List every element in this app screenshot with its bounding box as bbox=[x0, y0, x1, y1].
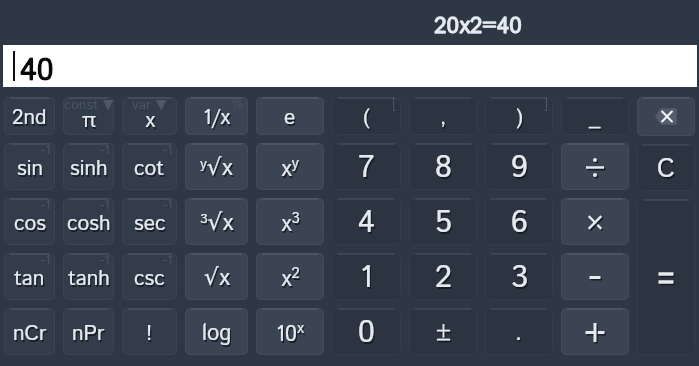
button[interactable]: 3√x bbox=[185, 198, 248, 245]
staticText: tanh bbox=[68, 264, 110, 294]
staticText: 8 bbox=[435, 146, 452, 190]
staticText: 6 bbox=[511, 201, 528, 245]
button[interactable]: x3 bbox=[256, 198, 324, 245]
button[interactable]: nCr bbox=[4, 308, 55, 355]
staticText: x2 bbox=[281, 263, 300, 295]
button[interactable]: , bbox=[409, 97, 477, 135]
staticText: ± bbox=[436, 316, 451, 351]
staticText: sec bbox=[134, 209, 166, 239]
button[interactable]: ( bbox=[332, 97, 401, 135]
button[interactable]: sinh bbox=[63, 143, 114, 190]
button[interactable] bbox=[561, 253, 629, 300]
staticText: -1 bbox=[41, 253, 51, 270]
staticText: [ bbox=[392, 97, 397, 114]
button[interactable]: 5 bbox=[409, 198, 477, 245]
other: Backspace bbox=[633, 93, 699, 140]
button[interactable]: ) bbox=[485, 97, 553, 135]
button[interactable]: x2 bbox=[256, 253, 324, 300]
button[interactable]: ± bbox=[409, 308, 477, 355]
staticText: 9 bbox=[511, 146, 528, 190]
button[interactable]: 1 bbox=[332, 253, 401, 300]
button[interactable]: √x bbox=[185, 253, 248, 300]
button[interactable] bbox=[637, 199, 695, 355]
other: Equals bbox=[633, 195, 699, 359]
button[interactable]: nPr bbox=[63, 308, 114, 355]
staticText: √x bbox=[204, 262, 230, 295]
staticText: 7 bbox=[358, 146, 375, 190]
staticText: 3√x bbox=[200, 207, 234, 240]
button[interactable] bbox=[561, 308, 629, 355]
button[interactable]: cos bbox=[4, 198, 55, 245]
button[interactable]: 4 bbox=[332, 198, 401, 245]
other: Multiply bbox=[557, 194, 633, 249]
button[interactable]: 2nd bbox=[4, 97, 55, 135]
button[interactable]: 8 bbox=[409, 143, 477, 190]
staticText: 5 bbox=[435, 201, 452, 245]
staticText: · bbox=[316, 97, 320, 114]
button[interactable]: _ bbox=[561, 97, 629, 135]
staticText: 4 bbox=[358, 201, 375, 245]
button[interactable]: 1/x bbox=[185, 97, 248, 135]
button[interactable]: log bbox=[185, 308, 248, 355]
button[interactable]: 6 bbox=[485, 198, 553, 245]
button[interactable]: 7 bbox=[332, 143, 401, 190]
button[interactable]: xy bbox=[256, 143, 324, 190]
staticText: 1 bbox=[360, 256, 373, 300]
other: Minus bbox=[557, 249, 633, 304]
button[interactable]: π bbox=[63, 97, 114, 135]
button[interactable]: 3 bbox=[485, 253, 553, 300]
staticText: _ bbox=[589, 103, 601, 133]
staticText: e bbox=[284, 103, 296, 133]
button[interactable]: 10x bbox=[256, 308, 324, 355]
staticText: % bbox=[232, 97, 244, 114]
staticText: -1 bbox=[100, 253, 110, 270]
staticText: 40 bbox=[20, 49, 54, 91]
button[interactable]: sec bbox=[122, 198, 177, 245]
other: Plus bbox=[557, 304, 633, 359]
staticText: 2 bbox=[435, 256, 452, 300]
button[interactable] bbox=[637, 97, 695, 136]
button[interactable]: 0 bbox=[332, 308, 401, 355]
staticText: 10x bbox=[276, 318, 304, 350]
staticText: x3 bbox=[281, 208, 300, 240]
button[interactable]: tan bbox=[4, 253, 55, 300]
button[interactable]: ! bbox=[122, 308, 177, 355]
button[interactable]: tanh bbox=[63, 253, 114, 300]
staticText: nCr bbox=[13, 319, 47, 349]
staticText: 2nd bbox=[12, 103, 47, 133]
button[interactable]: x bbox=[122, 97, 177, 135]
staticText: nPr bbox=[72, 319, 105, 349]
staticText: var ▼ bbox=[132, 97, 167, 115]
staticText: sinh bbox=[70, 154, 108, 184]
staticText: ] bbox=[544, 97, 549, 114]
staticText: -1 bbox=[100, 143, 110, 160]
staticText: cosh bbox=[67, 209, 111, 239]
staticText: cos bbox=[14, 209, 46, 239]
staticText: 20x2=40 bbox=[434, 10, 522, 43]
button[interactable]: C bbox=[637, 144, 695, 191]
staticText: , bbox=[440, 103, 447, 133]
button[interactable]: cot bbox=[122, 143, 177, 190]
button[interactable]: 2 bbox=[409, 253, 477, 300]
staticText: C bbox=[657, 151, 675, 188]
staticText: π bbox=[82, 106, 96, 135]
staticText: cot bbox=[134, 154, 165, 184]
button[interactable]: . bbox=[485, 308, 553, 355]
button[interactable]: y√x bbox=[185, 143, 248, 190]
staticText: -1 bbox=[163, 253, 173, 270]
button[interactable]: 9 bbox=[485, 143, 553, 190]
staticText: ( bbox=[363, 103, 370, 133]
button[interactable]: sin bbox=[4, 143, 55, 190]
button[interactable]: cosh bbox=[63, 198, 114, 245]
staticText: -1 bbox=[100, 198, 110, 215]
staticText: x bbox=[145, 106, 155, 135]
staticText: 0 bbox=[358, 311, 375, 355]
button[interactable]: e bbox=[256, 97, 324, 135]
staticText: ! bbox=[146, 319, 153, 349]
button[interactable]: csc bbox=[122, 253, 177, 300]
button[interactable] bbox=[561, 143, 629, 190]
button[interactable]: 40 bbox=[3, 45, 697, 87]
staticText: tan bbox=[14, 264, 45, 294]
button[interactable] bbox=[561, 198, 629, 245]
staticText: 1/x bbox=[203, 103, 231, 133]
